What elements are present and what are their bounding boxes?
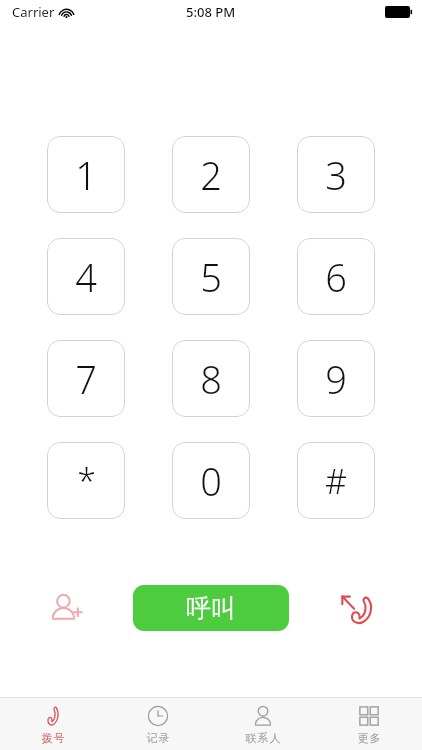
button[interactable]: Add contact xyxy=(0,576,133,640)
staticText: 拨号 xyxy=(41,731,65,745)
staticText: 5:08 PM xyxy=(186,3,236,21)
button[interactable]: 更多 xyxy=(316,698,422,750)
staticText: 2 xyxy=(200,149,222,201)
staticText: 7 xyxy=(75,353,97,405)
button[interactable]: 0 xyxy=(172,442,250,519)
staticText: * xyxy=(77,458,96,504)
staticText: 联系人 xyxy=(245,731,281,745)
staticText: 5 xyxy=(200,251,222,303)
button[interactable]: 3 xyxy=(297,136,375,213)
staticText: 4 xyxy=(75,251,97,303)
staticText: 1 xyxy=(75,149,97,201)
button[interactable]: 拨号 xyxy=(0,698,105,750)
button[interactable]: # xyxy=(297,442,375,519)
button[interactable]: 8 xyxy=(172,340,250,417)
staticText: 0 xyxy=(200,455,222,507)
button[interactable]: 7 xyxy=(47,340,125,417)
button[interactable]: Call back xyxy=(289,576,422,640)
button[interactable]: 记录 xyxy=(105,698,210,750)
button[interactable]: 4 xyxy=(47,238,125,315)
staticText: 6 xyxy=(325,251,347,303)
button[interactable]: 呼叫 xyxy=(133,585,289,631)
staticText: 更多 xyxy=(357,731,381,745)
staticText: 记录 xyxy=(146,731,170,745)
button[interactable]: 2 xyxy=(172,136,250,213)
button[interactable]: 1 xyxy=(47,136,125,213)
staticText: 3 xyxy=(325,149,347,201)
button[interactable]: * xyxy=(47,442,125,519)
staticText: 9 xyxy=(325,353,347,405)
button[interactable]: 6 xyxy=(297,238,375,315)
staticText: 8 xyxy=(200,353,222,405)
button[interactable]: 9 xyxy=(297,340,375,417)
button[interactable]: 联系人 xyxy=(210,698,316,750)
staticText: # xyxy=(325,458,347,504)
staticText: 呼叫 xyxy=(186,593,236,624)
staticText: Carrier xyxy=(12,3,55,21)
button[interactable]: 5 xyxy=(172,238,250,315)
